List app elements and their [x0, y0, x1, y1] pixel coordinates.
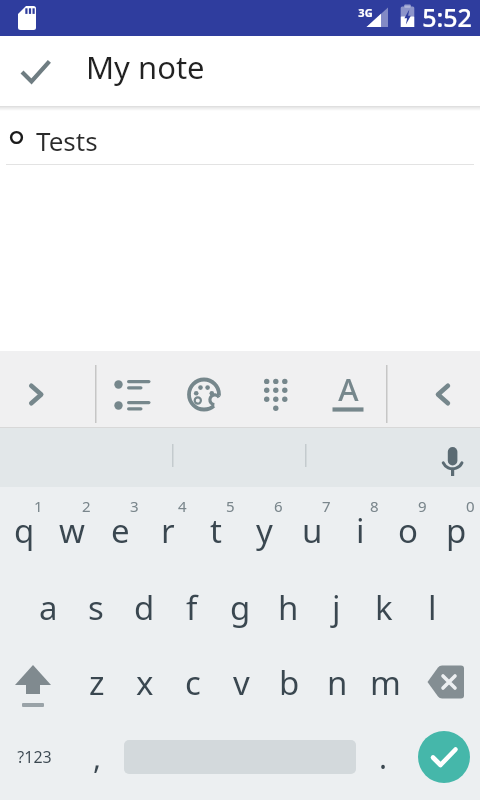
staticText: h — [278, 585, 299, 630]
staticText: 3G — [358, 5, 373, 20]
button[interactable] — [176, 357, 234, 421]
staticText: g — [230, 585, 251, 630]
button[interactable]: c — [169, 644, 217, 720]
button[interactable]: i — [336, 492, 384, 568]
button[interactable] — [318, 357, 376, 421]
staticText: q — [14, 508, 35, 553]
button[interactable]: ?123 — [8, 719, 60, 795]
button[interactable]: t — [192, 492, 240, 568]
button[interactable] — [104, 357, 162, 421]
button[interactable] — [412, 357, 474, 421]
staticText: My note — [86, 46, 205, 88]
staticText: i — [356, 508, 365, 553]
staticText: j — [332, 585, 341, 630]
staticText: l — [428, 585, 437, 630]
staticText: c — [185, 660, 201, 705]
staticText: 2 — [82, 496, 91, 516]
button[interactable]: u — [288, 492, 336, 568]
staticText: 5 — [226, 496, 235, 516]
staticText: , — [93, 737, 102, 778]
staticText: ?123 — [17, 746, 52, 768]
button[interactable]: x — [121, 644, 169, 720]
button[interactable]: o — [384, 492, 432, 568]
staticText: 8 — [370, 496, 379, 516]
button[interactable]: v — [217, 644, 265, 720]
button[interactable]: j — [312, 569, 360, 645]
staticText: . — [379, 737, 388, 778]
button[interactable] — [424, 430, 480, 486]
button[interactable] — [12, 50, 60, 98]
button[interactable]: e — [96, 492, 144, 568]
button[interactable]: q — [0, 492, 48, 568]
button[interactable]: f — [168, 569, 216, 645]
staticText: o — [398, 508, 418, 553]
button[interactable]: n — [313, 644, 361, 720]
button[interactable] — [6, 357, 68, 421]
button[interactable]: w — [48, 492, 96, 568]
button[interactable]: . — [359, 719, 407, 795]
button[interactable]: k — [360, 569, 408, 645]
staticText: f — [186, 585, 198, 630]
button[interactable]: , — [73, 719, 121, 795]
staticText: 0 — [466, 496, 475, 516]
staticText: 3 — [130, 496, 139, 516]
staticText: w — [59, 508, 85, 553]
button[interactable] — [247, 357, 305, 421]
button[interactable] — [409, 644, 480, 720]
staticText: a — [39, 585, 58, 630]
button[interactable]: l — [408, 569, 456, 645]
button[interactable]: s — [72, 569, 120, 645]
button[interactable]: d — [120, 569, 168, 645]
staticText: y — [256, 508, 273, 553]
staticText: 7 — [322, 496, 331, 516]
button[interactable]: b — [265, 644, 313, 720]
button[interactable] — [121, 719, 359, 795]
button[interactable]: m — [361, 644, 409, 720]
staticText: d — [134, 585, 155, 630]
staticText: p — [446, 508, 467, 553]
staticText: u — [302, 508, 323, 553]
button[interactable]: h — [264, 569, 312, 645]
staticText: m — [370, 660, 401, 705]
staticText: n — [327, 660, 348, 705]
staticText: s — [88, 585, 104, 630]
button[interactable]: Tests — [0, 111, 480, 351]
staticText: 1 — [34, 496, 43, 516]
staticText: 6 — [274, 496, 283, 516]
staticText: z — [89, 660, 105, 705]
staticText: 5:52 — [422, 0, 472, 30]
button[interactable]: y — [240, 492, 288, 568]
staticText: x — [136, 660, 154, 705]
staticText: Tests — [36, 123, 98, 158]
staticText: 9 — [418, 496, 427, 516]
staticText: 4 — [178, 496, 187, 516]
staticText: A — [338, 368, 359, 402]
button[interactable]: z — [73, 644, 121, 720]
button[interactable]: r — [144, 492, 192, 568]
staticText: t — [210, 508, 222, 553]
button[interactable]: a — [24, 569, 72, 645]
button[interactable] — [0, 644, 73, 720]
button[interactable] — [418, 731, 470, 783]
button[interactable]: g — [216, 569, 264, 645]
staticText: v — [233, 660, 250, 705]
staticText: k — [375, 585, 393, 630]
staticText: r — [161, 508, 175, 553]
button[interactable]: p — [432, 492, 480, 568]
staticText: b — [279, 660, 300, 705]
staticText: e — [111, 508, 130, 553]
